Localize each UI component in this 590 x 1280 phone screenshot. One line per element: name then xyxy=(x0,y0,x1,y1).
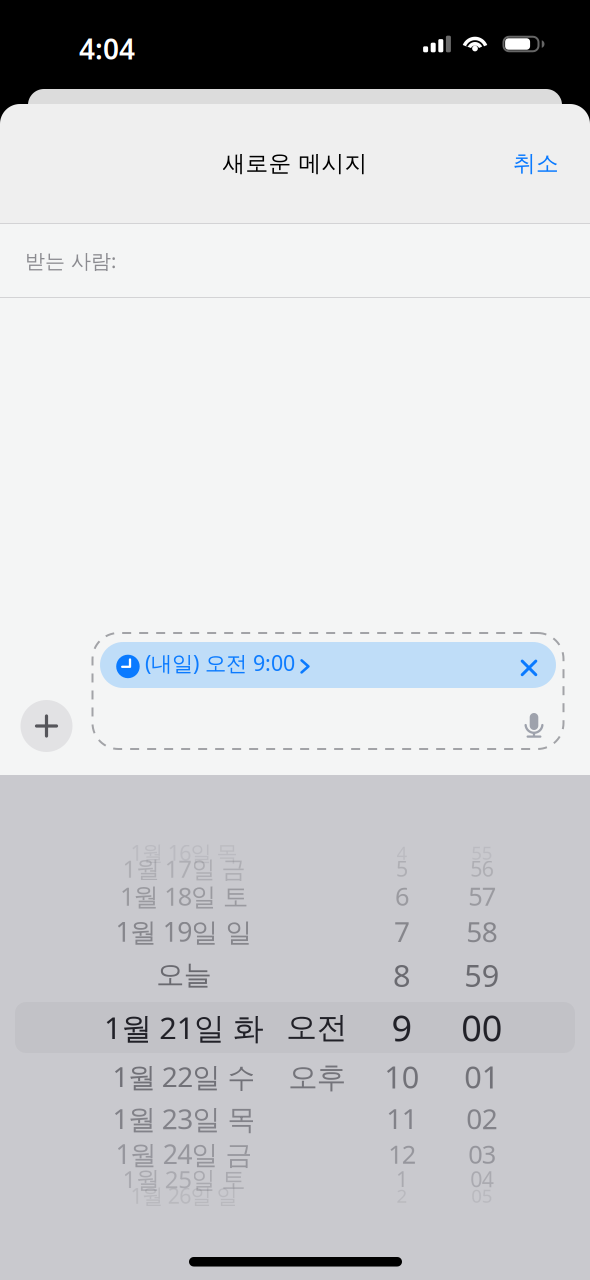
staticText: 03 xyxy=(468,1137,496,1171)
staticText: 오전 xyxy=(286,1009,348,1046)
button[interactable]: Add attachment xyxy=(20,700,72,752)
staticText: 11 xyxy=(386,1100,418,1137)
staticText: 받는 사람: xyxy=(25,247,116,274)
staticText: 새로운 메시지 xyxy=(222,150,367,177)
staticText: 1월 17일 금 xyxy=(123,853,245,884)
staticText: 1월 23일 목 xyxy=(113,1100,255,1137)
staticText: 1월 25일 토 xyxy=(123,1163,245,1195)
staticText: 10 xyxy=(384,1056,420,1097)
staticText: 04 xyxy=(470,1165,494,1193)
staticText: 1월 22일 수 xyxy=(113,1058,255,1095)
staticText: 00 xyxy=(461,1004,503,1051)
staticText: 05 xyxy=(471,1183,493,1208)
staticText: 1 xyxy=(396,1165,408,1193)
staticText: 오후 xyxy=(288,1059,346,1095)
staticText: 12 xyxy=(388,1137,416,1171)
staticText: 58 xyxy=(466,913,498,950)
staticText: 1월 26일 일 xyxy=(131,1181,237,1210)
staticText: 1월 19일 일 xyxy=(116,914,252,949)
staticText: 7 xyxy=(394,913,410,950)
staticText: 1월 24일 금 xyxy=(116,1136,252,1172)
staticText: 56 xyxy=(470,854,494,883)
staticText: 8 xyxy=(393,955,411,995)
staticText: 2 xyxy=(396,1183,407,1208)
staticText: 4 xyxy=(396,840,407,865)
staticText: 1월 16일 목 xyxy=(131,838,237,867)
staticText: 01 xyxy=(464,1056,500,1097)
staticText: (내일) 오전 9:00 xyxy=(145,648,295,677)
staticText: 1월 18일 토 xyxy=(120,879,248,913)
staticText: 02 xyxy=(466,1100,498,1137)
button[interactable]: Remove scheduled time xyxy=(506,645,551,690)
staticText: 55 xyxy=(471,840,493,865)
button[interactable]: 취소 xyxy=(495,136,577,191)
staticText: 취소 xyxy=(513,150,559,177)
staticText: 5 xyxy=(396,854,408,883)
button[interactable]: Dictate xyxy=(513,702,554,749)
staticText: 1월 21일 화 xyxy=(104,1007,264,1048)
staticText: 6 xyxy=(395,879,409,913)
staticText: 오늘 xyxy=(156,958,212,992)
staticText: 57 xyxy=(468,879,496,913)
staticText: 4:04 xyxy=(79,30,135,67)
staticText: 59 xyxy=(464,955,500,995)
staticText: 9 xyxy=(391,1004,412,1051)
